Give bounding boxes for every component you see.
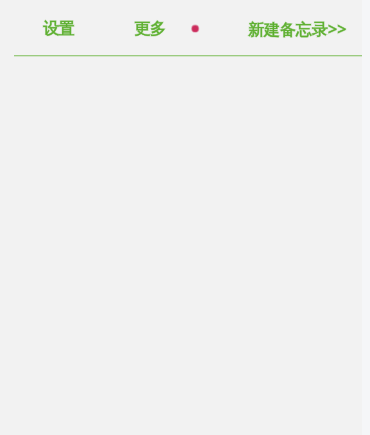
- staticText: 新建备忘录>>: [248, 18, 347, 40]
- button[interactable]: 设置: [29, 0, 89, 55]
- button[interactable]: 更多: [120, 0, 180, 55]
- button[interactable]: 新建备忘录>>: [237, 0, 357, 55]
- staticText: 更多: [134, 19, 166, 39]
- staticText: 新建备忘录>>: [248, 18, 347, 40]
- staticText: 设置: [43, 19, 75, 39]
- staticText: 设置: [43, 19, 75, 39]
- other: Unread indicator: [189, 22, 201, 34]
- staticText: 新建备忘录>>: [248, 18, 347, 40]
- staticText: 设置: [43, 19, 75, 39]
- staticText: 更多: [134, 19, 166, 39]
- staticText: 更多: [134, 19, 166, 39]
